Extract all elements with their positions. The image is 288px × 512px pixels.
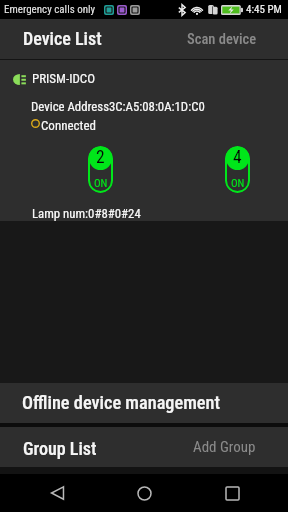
button[interactable]: 2 [88, 146, 113, 193]
staticText: Device List [23, 28, 102, 49]
staticText: Device Address3C:A5:08:0A:1D:C0 [31, 99, 205, 114]
staticText: ON [231, 177, 245, 190]
button[interactable]: Home [113, 474, 175, 512]
button[interactable]: Add Group [180, 427, 268, 467]
staticText: Emergency calls only [4, 3, 96, 16]
staticText: ON [94, 177, 108, 190]
staticText: 2 [96, 147, 105, 168]
staticText: Connected [41, 118, 96, 133]
staticText: 4:45 PM [246, 3, 282, 16]
button[interactable]: Scan device [174, 19, 270, 59]
button[interactable]: 4 [225, 146, 250, 193]
button[interactable]: Recent apps [201, 474, 263, 512]
button[interactable]: Offline device management [0, 383, 288, 423]
staticText: PRISM-IDCO [32, 71, 95, 86]
staticText: Group List [23, 438, 97, 459]
staticText: Offline device management [22, 392, 221, 413]
staticText: Add Group [193, 438, 256, 456]
staticText: Lamp num:0#8#0#24 [32, 206, 141, 221]
staticText: 4 [233, 147, 242, 168]
button[interactable]: Back [26, 474, 88, 512]
staticText: Scan device [187, 31, 257, 48]
